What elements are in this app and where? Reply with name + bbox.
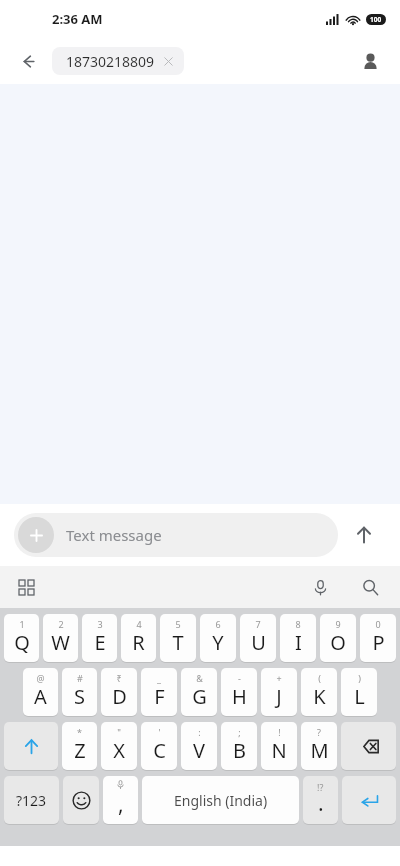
button[interactable]: M bbox=[301, 722, 337, 770]
staticText: K bbox=[313, 683, 326, 710]
button[interactable]: Toolbar bbox=[8, 569, 44, 605]
button[interactable]: J bbox=[261, 668, 297, 716]
staticText: ?123 bbox=[16, 791, 47, 810]
staticText: _ bbox=[157, 672, 161, 684]
staticText: U bbox=[251, 629, 266, 656]
button[interactable]: T bbox=[160, 614, 196, 662]
button[interactable]: Backspace bbox=[341, 722, 396, 770]
staticText: " bbox=[117, 726, 121, 738]
staticText: S bbox=[74, 683, 85, 710]
staticText: ) bbox=[358, 672, 361, 684]
staticText: # bbox=[77, 672, 83, 684]
staticText: 3 bbox=[97, 618, 103, 630]
button[interactable]: Send bbox=[342, 513, 386, 557]
button[interactable]: P bbox=[360, 614, 396, 662]
staticText: 0 bbox=[375, 618, 381, 630]
button[interactable]: F bbox=[141, 668, 177, 716]
button[interactable]: Comma bbox=[103, 776, 138, 824]
button[interactable]: G bbox=[181, 668, 217, 716]
button[interactable]: O bbox=[320, 614, 356, 662]
button[interactable]: Text message bbox=[14, 513, 338, 557]
staticText: ₹ bbox=[116, 672, 122, 684]
staticText: ? bbox=[317, 726, 321, 738]
button[interactable]: Q bbox=[4, 614, 39, 662]
button[interactable]: A bbox=[23, 668, 58, 716]
staticText: Z bbox=[74, 737, 86, 764]
staticText: Q bbox=[14, 629, 30, 656]
staticText: 9 bbox=[335, 618, 341, 630]
staticText: English (India) bbox=[174, 791, 268, 810]
staticText: & bbox=[196, 672, 203, 684]
button[interactable]: Search bbox=[352, 569, 388, 605]
button[interactable]: Emoji bbox=[63, 776, 99, 824]
staticText: J bbox=[276, 683, 282, 710]
staticText: + bbox=[276, 672, 282, 684]
staticText: 2:36 AM bbox=[52, 10, 103, 28]
staticText: ( bbox=[318, 672, 321, 684]
staticText: @ bbox=[36, 672, 45, 684]
staticText: D bbox=[112, 683, 127, 710]
staticText: * bbox=[77, 726, 82, 738]
button[interactable]: Back bbox=[8, 41, 48, 81]
button[interactable]: Z bbox=[62, 722, 97, 770]
staticText: ! bbox=[278, 726, 281, 738]
button[interactable]: Contact bbox=[350, 41, 390, 81]
staticText: 100 bbox=[370, 15, 382, 24]
staticText: N bbox=[271, 737, 287, 764]
staticText: 18730218809 bbox=[66, 52, 155, 71]
staticText: W bbox=[51, 629, 70, 656]
button[interactable]: Period bbox=[303, 776, 338, 824]
staticText: I bbox=[295, 629, 302, 656]
staticText: E bbox=[94, 629, 106, 656]
staticText: C bbox=[153, 737, 166, 764]
button[interactable]: S bbox=[62, 668, 97, 716]
staticText: 4 bbox=[136, 618, 142, 630]
staticText: ; bbox=[238, 726, 241, 738]
staticText: 2 bbox=[58, 618, 64, 630]
button[interactable]: V bbox=[181, 722, 217, 770]
staticText: B bbox=[233, 737, 246, 764]
button[interactable]: W bbox=[43, 614, 78, 662]
button[interactable]: R bbox=[121, 614, 156, 662]
button[interactable]: D bbox=[101, 668, 137, 716]
staticText: 6 bbox=[215, 618, 221, 630]
button[interactable]: C bbox=[141, 722, 177, 770]
button[interactable]: E bbox=[82, 614, 117, 662]
staticText: . bbox=[318, 789, 324, 818]
button[interactable]: K bbox=[301, 668, 337, 716]
staticText: V bbox=[193, 737, 205, 764]
staticText: Y bbox=[212, 629, 224, 656]
staticText: T bbox=[172, 629, 184, 656]
staticText: F bbox=[154, 683, 165, 710]
button[interactable]: 18730218809 bbox=[52, 47, 184, 75]
staticText: Text message bbox=[66, 525, 162, 545]
button[interactable]: L bbox=[341, 668, 377, 716]
staticText: X bbox=[113, 737, 125, 764]
staticText: !? bbox=[317, 781, 324, 793]
button[interactable] bbox=[4, 722, 58, 770]
staticText: 1 bbox=[19, 618, 25, 630]
button[interactable]: X bbox=[101, 722, 137, 770]
staticText: 7 bbox=[255, 618, 261, 630]
staticText: G bbox=[192, 683, 207, 710]
staticText: A bbox=[34, 683, 47, 710]
button[interactable]: N bbox=[261, 722, 297, 770]
staticText: O bbox=[330, 629, 346, 656]
button[interactable]: H bbox=[221, 668, 257, 716]
button[interactable]: U bbox=[240, 614, 276, 662]
staticText: ' bbox=[158, 726, 161, 738]
staticText: R bbox=[132, 629, 145, 656]
staticText: M bbox=[310, 737, 329, 764]
staticText: 5 bbox=[175, 618, 181, 630]
staticText: L bbox=[354, 683, 365, 710]
button[interactable]: Y bbox=[200, 614, 236, 662]
button[interactable]: Voice input bbox=[302, 569, 338, 605]
staticText: , bbox=[118, 790, 124, 819]
button[interactable]: Enter bbox=[342, 776, 396, 824]
staticText: H bbox=[232, 683, 247, 710]
staticText: : bbox=[198, 726, 201, 738]
button[interactable]: I bbox=[280, 614, 316, 662]
button[interactable]: Symbols bbox=[4, 776, 59, 824]
button[interactable]: Space bbox=[142, 776, 299, 824]
button[interactable]: B bbox=[221, 722, 257, 770]
